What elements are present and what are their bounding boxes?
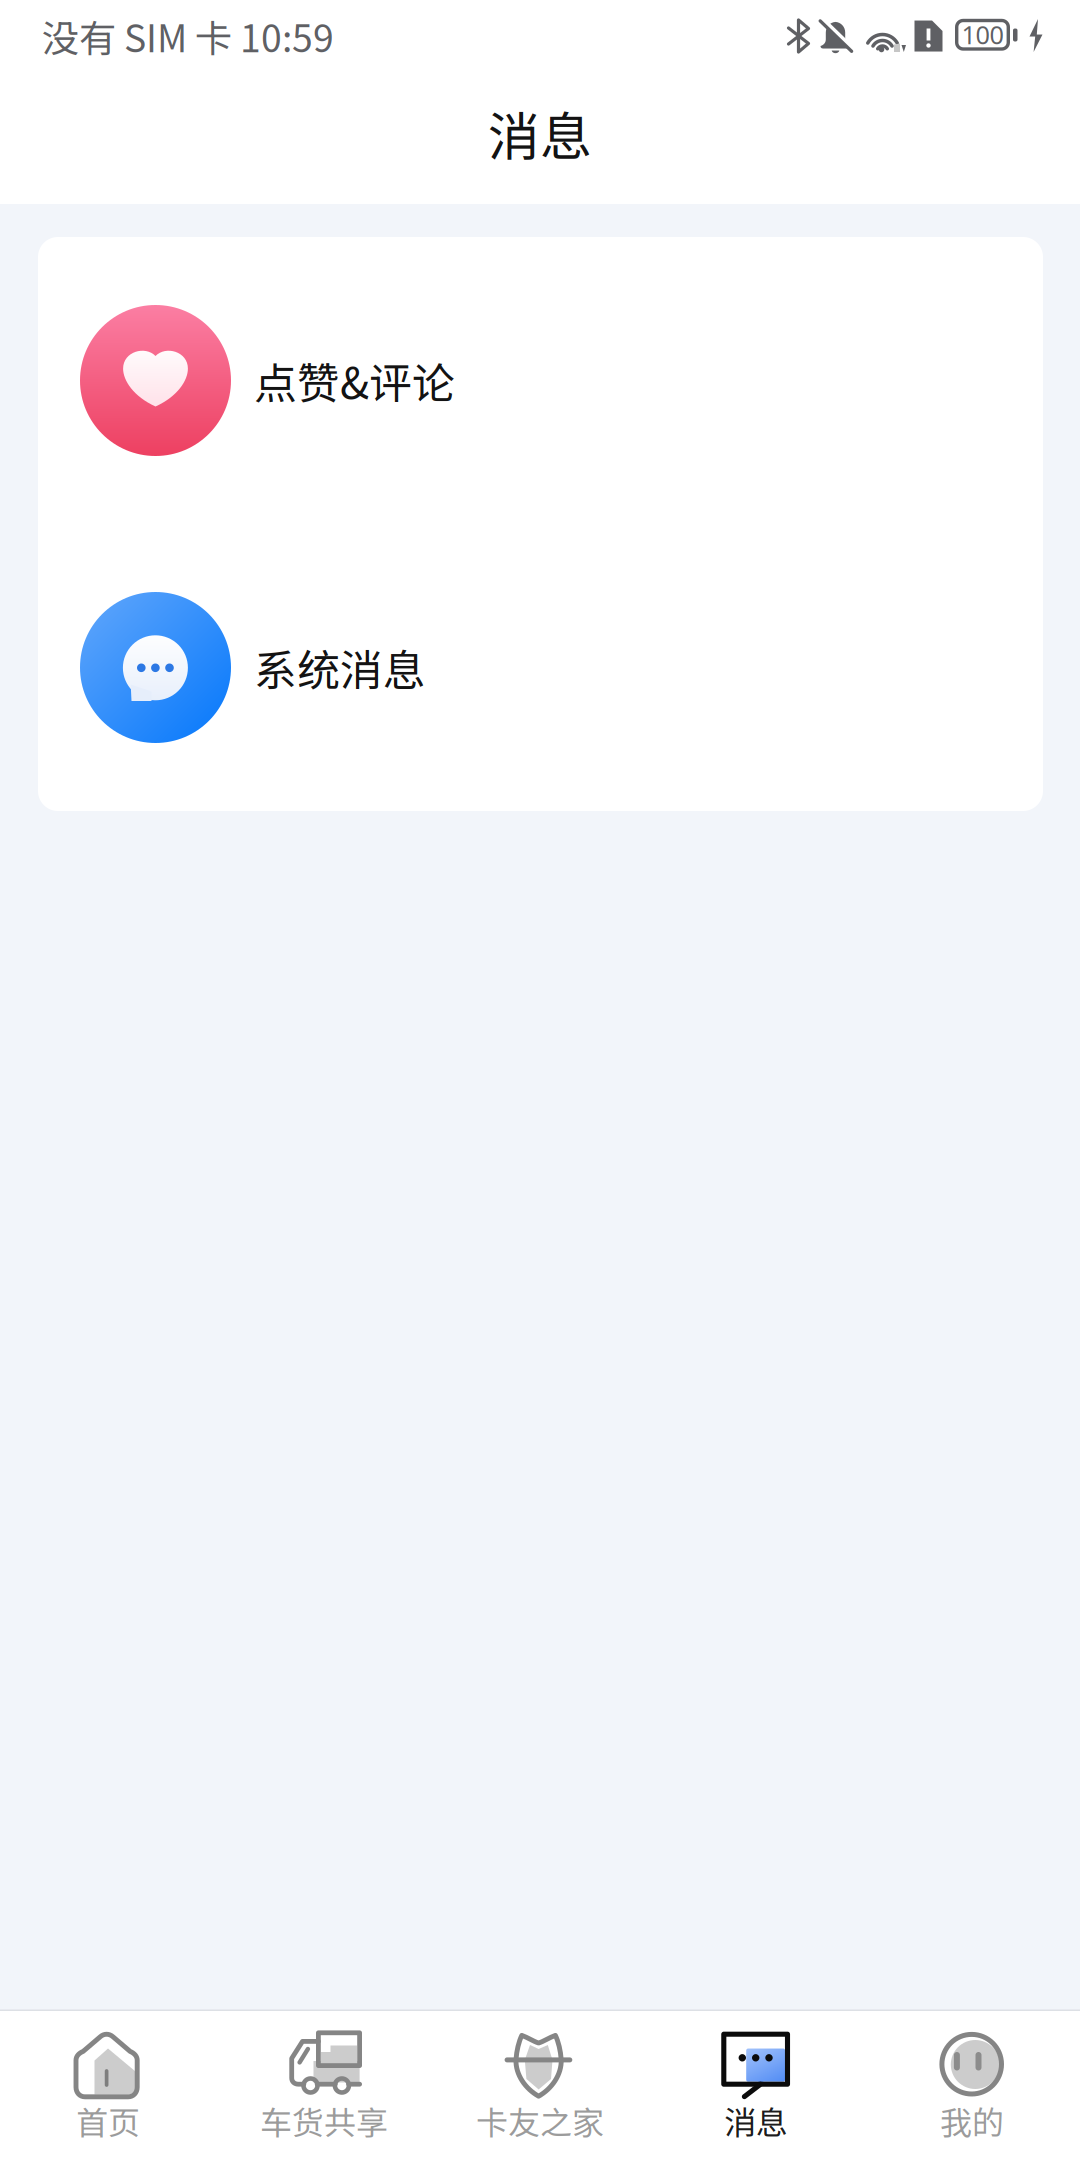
staticText: 100: [961, 17, 1003, 52]
button[interactable]: 系统消息: [38, 524, 1043, 811]
staticText: 没有 SIM 卡 10:59: [42, 9, 334, 63]
button[interactable]: 车货共享: [216, 2011, 432, 2160]
staticText: 系统消息: [254, 637, 426, 698]
button[interactable]: 消息: [648, 2011, 864, 2160]
button[interactable]: 我的: [864, 2011, 1080, 2160]
staticText: 卡友之家: [476, 2097, 604, 2144]
staticText: 我的: [940, 2097, 1004, 2144]
staticText: 消息: [724, 2097, 788, 2144]
staticText: 消息: [488, 95, 592, 171]
staticText: 车货共享: [260, 2097, 388, 2144]
button[interactable]: 卡友之家: [432, 2011, 648, 2160]
button[interactable]: 首页: [0, 2011, 216, 2160]
staticText: 点赞&评论: [254, 350, 455, 411]
staticText: 首页: [76, 2097, 140, 2144]
button[interactable]: 点赞&评论: [38, 237, 1043, 524]
